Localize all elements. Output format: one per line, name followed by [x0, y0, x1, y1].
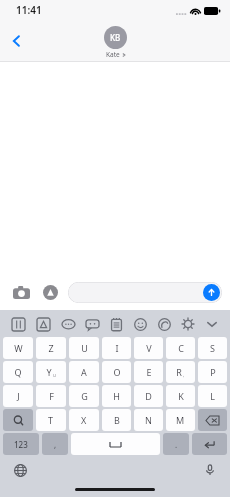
- staticText: I: [115, 342, 119, 354]
- staticText: L: [210, 390, 215, 402]
- staticText: U: [81, 342, 88, 354]
- staticText: S: [210, 342, 215, 354]
- button[interactable]: X: [69, 409, 99, 431]
- button[interactable]: F: [36, 385, 66, 407]
- button[interactable]: Apps: [37, 279, 63, 305]
- staticText: T: [48, 414, 54, 426]
- button[interactable]: Notes: [104, 312, 128, 336]
- button[interactable]: G: [69, 385, 99, 407]
- staticText: KB: [110, 32, 121, 43]
- button[interactable]: 123: [3, 433, 39, 455]
- button[interactable]: L: [198, 385, 227, 407]
- button[interactable]: Store: [6, 312, 31, 336]
- staticText: W: [14, 342, 23, 354]
- button[interactable]: P: [198, 361, 227, 383]
- button[interactable]: ,: [42, 433, 68, 455]
- button[interactable]: Memoji: [80, 312, 104, 336]
- button[interactable]: E: [134, 361, 163, 383]
- button[interactable]: Photos: [31, 312, 56, 336]
- button[interactable]: Collapse: [200, 312, 224, 336]
- button[interactable]: Settings: [176, 312, 200, 336]
- staticText: P: [210, 366, 216, 378]
- staticText: V: [146, 342, 152, 354]
- staticText: K: [178, 390, 184, 402]
- button[interactable]: Messages: [56, 312, 80, 336]
- staticText: M: [176, 414, 185, 426]
- button[interactable]: D: [134, 385, 163, 407]
- staticText: R: [176, 366, 182, 378]
- button[interactable]: N: [134, 409, 163, 431]
- button[interactable]: Z: [36, 337, 66, 359]
- button[interactable]: Send: [68, 282, 222, 303]
- button[interactable]: Backspace: [198, 409, 227, 431]
- button[interactable]: V: [134, 337, 163, 359]
- button[interactable]: Return: [192, 433, 227, 455]
- button[interactable]: U: [69, 337, 99, 359]
- staticText: N: [145, 414, 152, 426]
- button[interactable]: A: [69, 361, 99, 383]
- staticText: 11:41: [16, 3, 42, 17]
- button[interactable]: .: [163, 433, 189, 455]
- staticText: O: [113, 366, 121, 378]
- staticText: F: [49, 390, 54, 402]
- button[interactable]: Y: [36, 361, 66, 383]
- button[interactable]: O: [102, 361, 131, 383]
- staticText: Q: [14, 366, 22, 378]
- button[interactable]: Camera: [8, 279, 34, 305]
- staticText: C: [178, 342, 184, 354]
- staticText: Y: [46, 366, 52, 378]
- staticText: .: [175, 439, 178, 450]
- button[interactable]: M: [166, 409, 195, 431]
- staticText: H: [113, 390, 120, 402]
- button[interactable]: Search: [3, 409, 33, 431]
- staticText: Kate: [106, 50, 120, 59]
- staticText: B: [114, 414, 120, 426]
- staticText: u: [53, 372, 56, 378]
- button[interactable]: Dictation: [199, 459, 221, 481]
- button[interactable]: R: [166, 361, 195, 383]
- button[interactable]: T: [36, 409, 66, 431]
- button[interactable]: Space: [71, 433, 160, 455]
- button[interactable]: Back: [2, 26, 32, 56]
- staticText: E: [146, 366, 152, 378]
- staticText: ,: [183, 372, 185, 378]
- button[interactable]: J: [3, 385, 33, 407]
- other: Send: [203, 284, 220, 301]
- button[interactable]: B: [102, 409, 131, 431]
- staticText: ,: [54, 439, 57, 450]
- button[interactable]: Emoji: [128, 312, 152, 336]
- button[interactable]: S: [198, 337, 227, 359]
- button[interactable]: KB: [104, 26, 127, 59]
- staticText: 123: [14, 439, 28, 450]
- button[interactable]: Music: [152, 312, 176, 336]
- staticText: D: [145, 390, 152, 402]
- button[interactable]: K: [166, 385, 195, 407]
- button[interactable]: Change keyboard: [9, 459, 31, 481]
- staticText: J: [17, 390, 20, 402]
- button[interactable]: W: [3, 337, 33, 359]
- button[interactable]: I: [102, 337, 131, 359]
- button[interactable]: C: [166, 337, 195, 359]
- staticText: A: [81, 366, 87, 378]
- button[interactable]: Q: [3, 361, 33, 383]
- staticText: X: [81, 414, 87, 426]
- button[interactable]: H: [102, 385, 131, 407]
- staticText: G: [81, 390, 88, 402]
- staticText: Z: [48, 342, 54, 354]
